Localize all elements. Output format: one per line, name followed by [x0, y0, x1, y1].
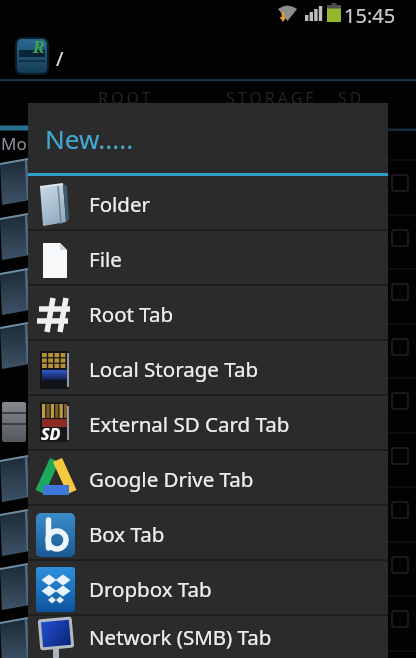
- staticText: SD: [338, 87, 365, 109]
- staticText: Local Storage Tab: [89, 355, 259, 383]
- button[interactable]: Box Tab: [28, 506, 388, 561]
- staticText: File: [89, 245, 122, 273]
- staticText: /: [56, 45, 64, 72]
- staticText: Box Tab: [89, 520, 165, 548]
- staticText: Folder: [89, 190, 150, 218]
- staticText: External SD Card Tab: [89, 410, 290, 438]
- button[interactable]: Network (SMB) Tab: [28, 616, 388, 658]
- button[interactable]: Dropbox Tab: [28, 561, 388, 616]
- staticText: SD: [41, 423, 61, 445]
- button[interactable]: Root Tab: [28, 286, 388, 341]
- button[interactable]: Local Storage Tab: [28, 341, 388, 396]
- staticText: Network (SMB) Tab: [89, 623, 272, 651]
- button[interactable]: File: [28, 231, 388, 286]
- staticText: STORAGE: [226, 87, 318, 109]
- button[interactable]: STORAGE: [138, 82, 276, 126]
- button[interactable]: SD: [28, 396, 388, 451]
- staticText: Mount: [1, 132, 54, 155]
- staticText: R: [33, 36, 45, 58]
- staticText: New.....: [45, 121, 134, 156]
- button[interactable]: Google Drive Tab: [28, 451, 388, 506]
- button[interactable]: SD: [276, 82, 416, 126]
- button[interactable]: ROOT: [0, 82, 138, 126]
- button[interactable]: Folder: [28, 176, 388, 231]
- staticText: Root Tab: [89, 300, 174, 328]
- staticText: ROOT: [98, 87, 154, 109]
- staticText: Dropbox Tab: [89, 575, 212, 603]
- staticText: Google Drive Tab: [89, 465, 254, 493]
- staticText: 15:45: [344, 2, 396, 29]
